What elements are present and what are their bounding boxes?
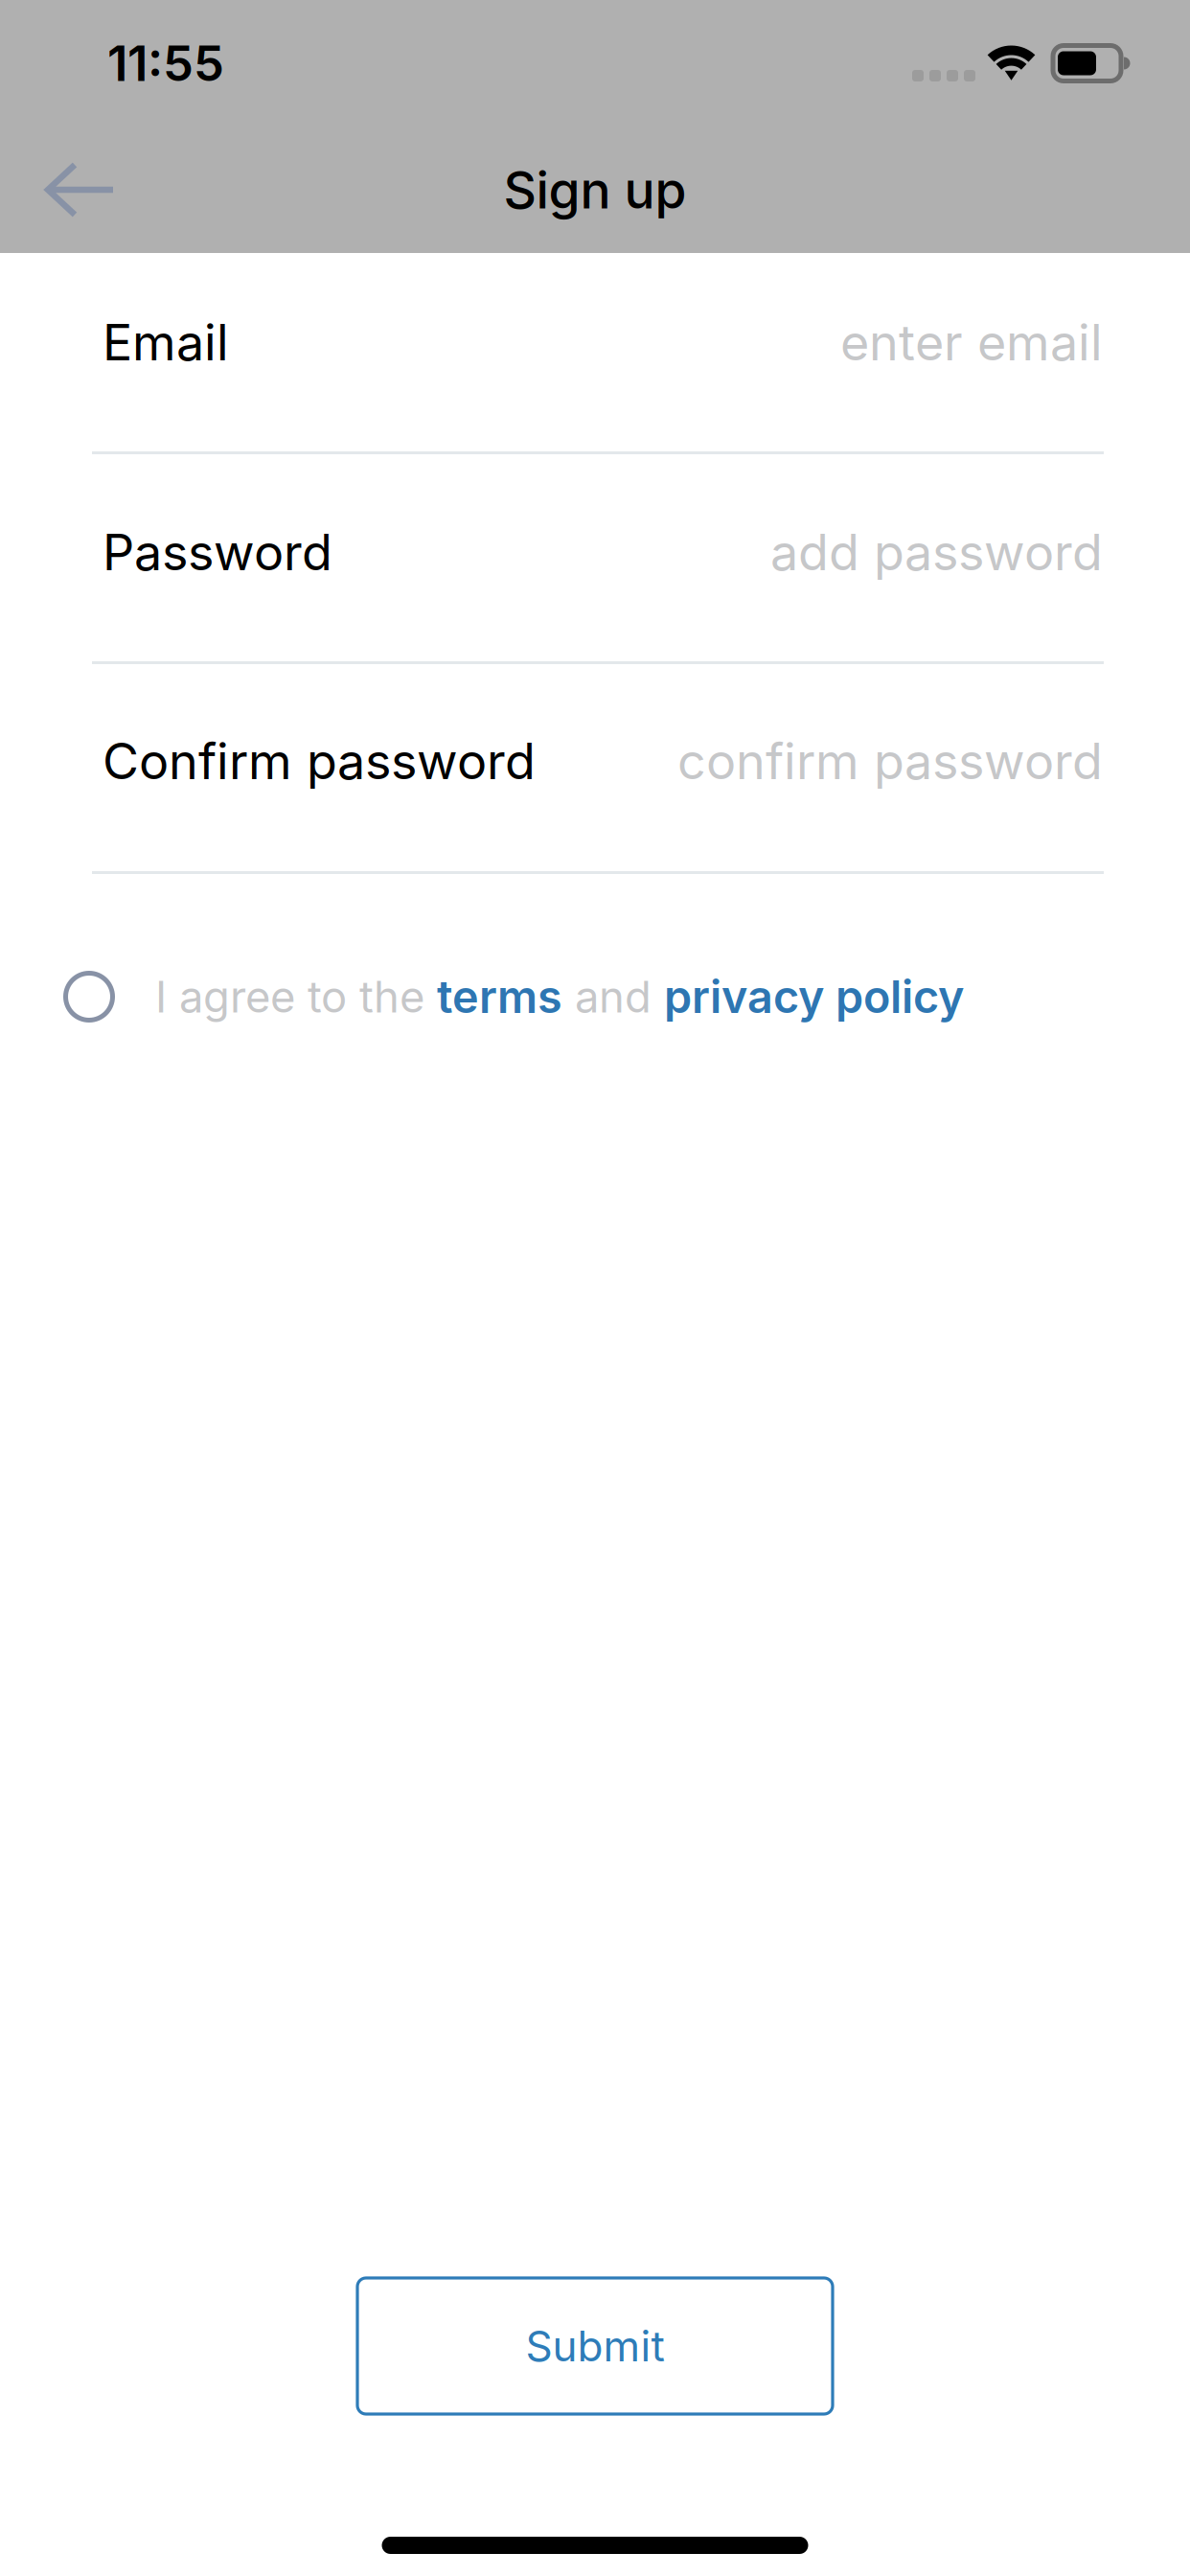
button[interactable]: Confirm password [0, 664, 1190, 874]
staticText: and [562, 970, 664, 1023]
staticText: enter email [840, 312, 1103, 372]
button[interactable]: I agree to the [0, 874, 1190, 1119]
staticText: privacy policy [664, 970, 964, 1024]
button[interactable]: Email [0, 253, 1190, 454]
staticText: Email [103, 312, 229, 372]
button[interactable]: Back [22, 132, 137, 247]
staticText: Confirm password [103, 731, 536, 791]
staticText: Password [103, 522, 332, 582]
staticText: add password [770, 522, 1103, 582]
staticText: Sign up [503, 159, 687, 221]
staticText: terms [437, 970, 562, 1024]
staticText: I agree to the [155, 970, 437, 1023]
staticText: Submit [526, 2321, 664, 2371]
button[interactable]: Submit [357, 2278, 833, 2414]
staticText: 11:55 [107, 34, 224, 93]
staticText: confirm password [677, 731, 1103, 791]
button[interactable]: Password [0, 454, 1190, 664]
